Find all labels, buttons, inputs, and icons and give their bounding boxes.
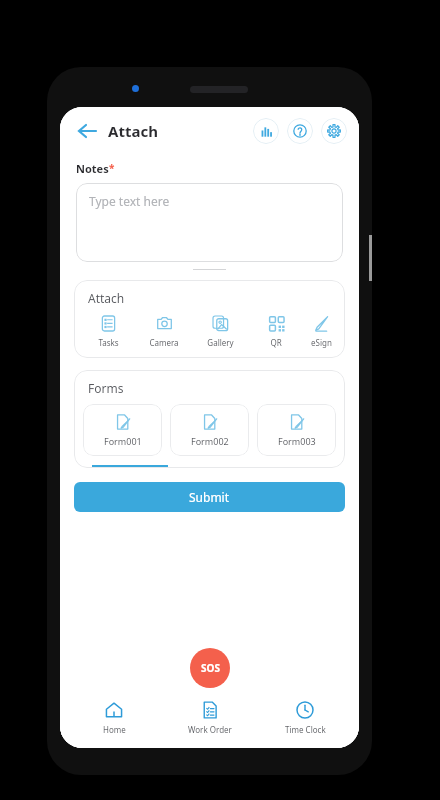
button[interactable]: Time Clock [264,700,346,735]
staticText: Forms [88,380,124,396]
staticText: Form003 [278,435,316,447]
button[interactable]: Back [72,116,102,146]
button[interactable]: Tasks [80,312,136,350]
button[interactable]: Camera [136,312,192,350]
staticText: Tasks [98,337,119,348]
button[interactable]: Form001 [83,404,162,456]
staticText: * [109,161,115,175]
staticText: Notes [76,161,109,176]
button[interactable]: SOS [190,648,230,688]
staticText: Gallery [207,337,234,348]
button[interactable]: QR [248,312,304,350]
staticText: Submit [189,489,230,505]
button[interactable]: Help [287,118,313,144]
button[interactable]: Form003 [257,404,336,456]
staticText: Time Clock [285,724,326,735]
staticText: Form002 [191,435,229,447]
staticText: QR [270,337,282,348]
staticText: Type text here [89,193,170,209]
button[interactable]: Work Order [169,700,251,735]
button[interactable]: Form002 [170,404,249,456]
staticText: SOS [201,661,220,675]
staticText: Work Order [188,724,232,735]
button[interactable]: Settings [321,118,347,144]
button[interactable]: Type text here [76,183,343,262]
staticText: eSign [311,337,332,348]
staticText: Camera [149,337,179,348]
staticText: Form001 [104,435,142,447]
button[interactable]: Gallery [192,312,248,350]
staticText: Attach [88,290,125,306]
button[interactable]: eSign [304,312,339,350]
button[interactable]: Submit [74,482,345,512]
staticText: Attach [108,121,158,141]
staticText: Home [103,724,126,735]
button[interactable]: Home [73,700,155,735]
button[interactable]: Reports [253,118,279,144]
